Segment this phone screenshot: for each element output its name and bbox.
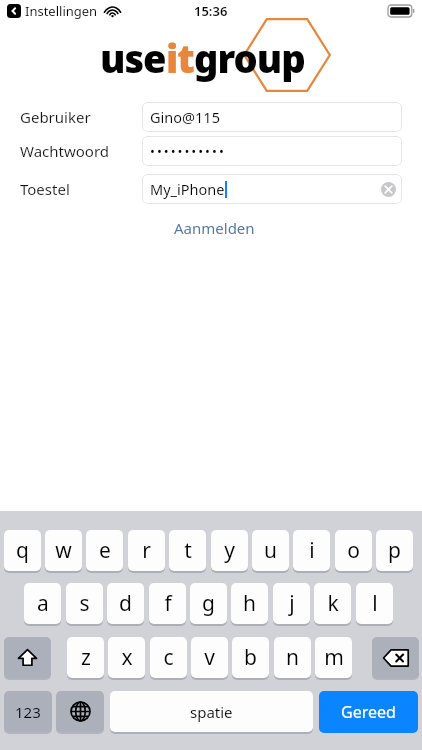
staticText: Gebruiker — [20, 107, 142, 127]
button[interactable]: ••••••••••• — [142, 136, 402, 166]
button[interactable]: b — [232, 637, 269, 678]
staticText: k — [327, 589, 339, 618]
staticText: e — [99, 536, 111, 565]
staticText: n — [286, 643, 299, 672]
staticText: l — [372, 589, 378, 618]
button[interactable]: Gino@115 — [142, 102, 402, 132]
button[interactable]: Hoofdletters — [4, 637, 51, 678]
button[interactable]: Aanmelden — [168, 214, 261, 242]
button[interactable]: i — [293, 530, 330, 571]
staticText: 123 — [15, 702, 41, 722]
staticText: r — [142, 536, 151, 565]
button[interactable]: e — [86, 530, 123, 571]
button[interactable]: u — [252, 530, 289, 571]
button[interactable]: My_iPhone — [142, 174, 402, 204]
button[interactable]: f — [149, 583, 186, 624]
staticText: i — [309, 536, 315, 565]
staticText: use — [100, 32, 166, 84]
staticText: Instellingen — [25, 2, 98, 20]
staticText: d — [119, 589, 132, 618]
staticText: v — [204, 643, 215, 672]
staticText: 15:36 — [194, 2, 228, 20]
button[interactable]: spatie — [110, 691, 313, 732]
button[interactable]: Toetsenbordtaal wijzigen — [56, 691, 104, 732]
staticText: Wachtwoord — [20, 141, 142, 161]
staticText: Gino@115 — [150, 107, 220, 127]
button[interactable]: a — [24, 583, 61, 624]
staticText: w — [55, 536, 72, 565]
button[interactable]: t — [169, 530, 206, 571]
button[interactable]: y — [211, 530, 248, 571]
button[interactable]: Tekst wissen — [381, 182, 396, 197]
staticText: Gereed — [341, 701, 396, 723]
staticText: o — [347, 536, 360, 565]
staticText: s — [79, 589, 90, 618]
staticText: group — [194, 32, 305, 84]
button[interactable]: Cijfertoetsenbord — [4, 691, 52, 732]
button[interactable]: g — [190, 583, 227, 624]
button[interactable]: m — [315, 637, 352, 678]
staticText: b — [244, 643, 257, 672]
staticText: Aanmelden — [174, 218, 255, 238]
staticText: j — [289, 589, 295, 618]
staticText: ••••••••••• — [150, 142, 226, 160]
button[interactable]: l — [356, 583, 393, 624]
button[interactable]: Terug naar Instellingen — [5, 2, 122, 20]
button[interactable]: j — [273, 583, 310, 624]
button[interactable]: n — [274, 637, 311, 678]
button[interactable]: o — [335, 530, 372, 571]
staticText: spatie — [190, 702, 233, 722]
button[interactable]: q — [4, 530, 41, 571]
staticText: My_iPhone — [150, 179, 225, 199]
staticText: f — [164, 589, 172, 618]
staticText: x — [121, 643, 133, 672]
button[interactable]: s — [66, 583, 103, 624]
staticText: a — [37, 589, 49, 618]
button[interactable]: z — [67, 637, 104, 678]
button[interactable]: d — [107, 583, 144, 624]
staticText: c — [163, 643, 174, 672]
button[interactable]: Backspace — [372, 637, 419, 678]
button[interactable]: k — [314, 583, 351, 624]
staticText: q — [16, 536, 29, 565]
button[interactable]: c — [150, 637, 187, 678]
staticText: u — [264, 536, 277, 565]
staticText: p — [388, 536, 401, 565]
button[interactable]: Gereed — [319, 691, 418, 733]
button[interactable]: w — [45, 530, 82, 571]
staticText: g — [202, 589, 215, 618]
staticText: y — [224, 536, 235, 565]
staticText: h — [243, 589, 256, 618]
staticText: it — [166, 32, 194, 84]
button[interactable]: p — [376, 530, 413, 571]
button[interactable]: r — [128, 530, 165, 571]
staticText: t — [184, 536, 192, 565]
button[interactable]: x — [108, 637, 145, 678]
button[interactable]: v — [191, 637, 228, 678]
staticText: m — [324, 643, 344, 672]
staticText: Toestel — [20, 179, 142, 199]
staticText: z — [81, 643, 91, 672]
button[interactable]: h — [231, 583, 268, 624]
